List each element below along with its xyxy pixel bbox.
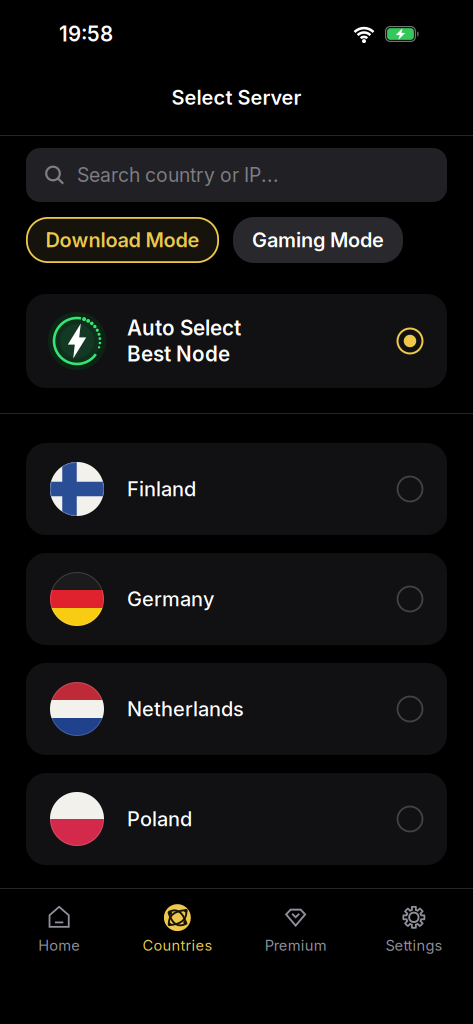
button[interactable]: Settings xyxy=(355,889,473,965)
button[interactable]: Auto Select xyxy=(26,294,447,388)
staticText: Germany xyxy=(127,587,214,611)
button[interactable]: Premium xyxy=(236,889,355,965)
button[interactable]: Gaming Mode xyxy=(233,217,403,263)
staticText: Netherlands xyxy=(127,697,244,721)
button[interactable]: Countries xyxy=(118,889,236,965)
staticText: Poland xyxy=(127,807,192,831)
button[interactable]: Poland xyxy=(26,773,447,865)
button[interactable]: Germany xyxy=(26,553,447,645)
staticText: Download Mode xyxy=(45,228,199,252)
staticText: Search country or IP... xyxy=(77,163,279,187)
staticText: Countries xyxy=(142,937,212,954)
button[interactable]: Search country or IP xyxy=(26,148,447,202)
button[interactable]: Finland xyxy=(26,443,447,535)
button[interactable]: Download Mode xyxy=(26,217,219,263)
staticText: Best Node xyxy=(127,341,230,366)
staticText: Select Server xyxy=(171,85,301,110)
staticText: Settings xyxy=(385,937,442,954)
button[interactable]: Netherlands xyxy=(26,663,447,755)
staticText: Auto Select xyxy=(127,315,241,340)
staticText: Premium xyxy=(265,937,327,954)
staticText: Finland xyxy=(127,477,196,501)
button[interactable]: Home xyxy=(0,889,118,965)
staticText: Gaming Mode xyxy=(252,228,384,252)
staticText: Home xyxy=(38,937,80,954)
staticText: 19:58 xyxy=(59,21,113,46)
